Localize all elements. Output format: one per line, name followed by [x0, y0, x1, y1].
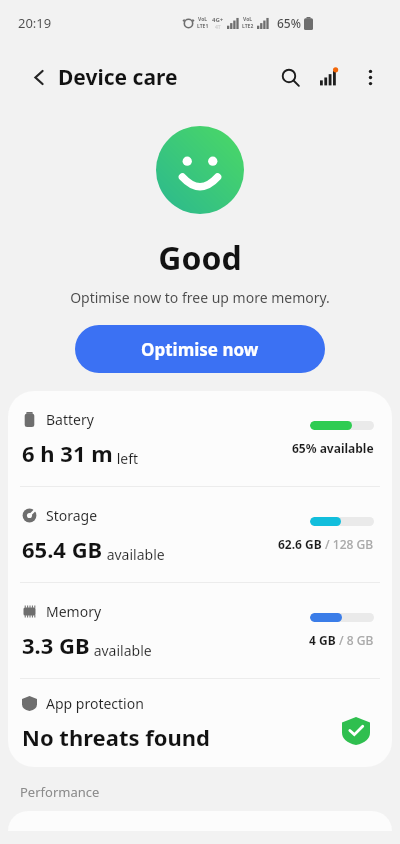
- staticText: 4T: [215, 24, 221, 31]
- button[interactable]: Memory: [8, 583, 392, 678]
- button[interactable]: Usage statistics: [310, 57, 350, 97]
- staticText: Battery: [46, 410, 94, 429]
- button[interactable]: Battery: [8, 391, 392, 486]
- staticText: 65% available: [292, 440, 374, 456]
- staticText: 20:19: [18, 14, 52, 32]
- staticText: 4 GB: [309, 632, 336, 648]
- staticText: VoL: [243, 16, 253, 23]
- staticText: available: [103, 545, 165, 564]
- staticText: 65%: [277, 15, 301, 31]
- staticText: 6 h 31 m: [22, 438, 113, 468]
- button[interactable]: Storage: [8, 487, 392, 582]
- staticText: App protection: [46, 694, 144, 713]
- staticText: available: [90, 641, 152, 660]
- staticText: Memory: [46, 602, 102, 621]
- staticText: Device care: [58, 63, 178, 92]
- staticText: / 8 GB: [336, 632, 374, 648]
- staticText: / 128 GB: [322, 536, 374, 552]
- staticText: Performance: [20, 783, 100, 801]
- staticText: left: [113, 449, 139, 468]
- staticText: Optimise now to free up more memory.: [70, 288, 330, 307]
- staticText: 65.4 GB: [22, 534, 103, 564]
- staticText: 3.3 GB: [22, 630, 90, 660]
- staticText: 62.6 GB: [278, 536, 322, 552]
- staticText: LTE2: [242, 23, 254, 30]
- staticText: Optimise now: [141, 338, 259, 361]
- staticText: No threats found: [22, 722, 210, 752]
- button[interactable]: Optimise now: [75, 325, 325, 373]
- staticText: VoL: [198, 16, 208, 23]
- button[interactable]: Back: [22, 60, 56, 94]
- button[interactable]: Search: [270, 57, 310, 97]
- button[interactable]: App protection: [8, 679, 392, 767]
- staticText: Good: [158, 236, 242, 280]
- staticText: LTE1: [197, 23, 209, 30]
- staticText: 4G+: [212, 16, 224, 24]
- button[interactable]: More options: [350, 57, 390, 97]
- staticText: Storage: [46, 506, 98, 525]
